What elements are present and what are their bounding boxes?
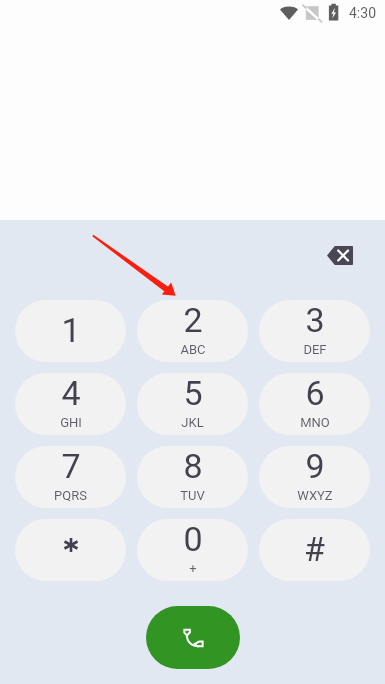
staticText: 1 bbox=[61, 310, 81, 350]
staticText: 0 bbox=[183, 519, 203, 559]
staticText: PQRS bbox=[54, 488, 87, 503]
button[interactable]: # bbox=[259, 519, 370, 581]
button[interactable]: 1 bbox=[15, 300, 126, 362]
button[interactable]: Call bbox=[146, 606, 240, 669]
button[interactable]: 3 bbox=[259, 300, 370, 362]
button[interactable]: 6 bbox=[259, 373, 370, 435]
staticText: 4:30 bbox=[349, 5, 376, 21]
staticText: MNO bbox=[300, 415, 330, 430]
staticText: + bbox=[189, 561, 197, 576]
staticText: 7 bbox=[61, 446, 81, 486]
staticText: 8 bbox=[183, 446, 203, 486]
button[interactable]: 8 bbox=[137, 446, 248, 508]
button[interactable] bbox=[15, 519, 126, 581]
button[interactable]: 4 bbox=[15, 373, 126, 435]
staticText: JKL bbox=[181, 415, 204, 430]
button[interactable]: Backspace bbox=[316, 233, 364, 277]
staticText: 6 bbox=[305, 373, 325, 413]
staticText: TUV bbox=[180, 488, 205, 503]
staticText: 9 bbox=[305, 446, 325, 486]
button[interactable]: 9 bbox=[259, 446, 370, 508]
staticText: 5 bbox=[183, 373, 203, 413]
button[interactable]: 2 bbox=[137, 300, 248, 362]
staticText: DEF bbox=[303, 342, 327, 357]
staticText: WXYZ bbox=[297, 488, 333, 503]
staticText: 4 bbox=[61, 373, 81, 413]
staticText: 2 bbox=[183, 300, 203, 340]
staticText: ABC bbox=[180, 342, 206, 357]
staticText: GHI bbox=[60, 415, 82, 430]
button[interactable]: 7 bbox=[15, 446, 126, 508]
button[interactable]: 0 bbox=[137, 519, 248, 581]
staticText: # bbox=[304, 529, 325, 569]
button[interactable]: 5 bbox=[137, 373, 248, 435]
staticText: 3 bbox=[305, 300, 325, 340]
